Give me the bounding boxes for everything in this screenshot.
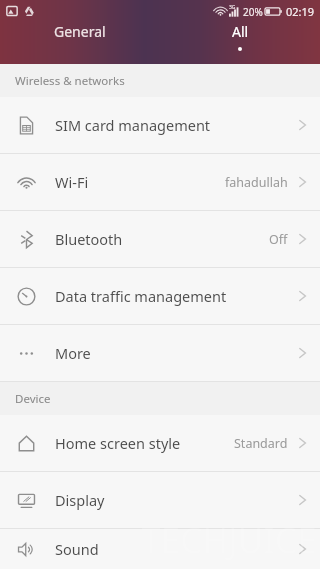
staticText: Data traffic management <box>55 286 298 306</box>
button[interactable]: Bluetooth <box>0 211 320 268</box>
staticText: TECHJUICE <box>142 517 318 563</box>
staticText: All <box>232 22 249 41</box>
button[interactable]: Wi-Fi <box>0 154 320 211</box>
other: Wi-Fi <box>15 171 37 193</box>
button[interactable]: General <box>0 22 160 47</box>
button[interactable]: Display <box>0 472 320 529</box>
staticText: General <box>54 22 106 41</box>
staticText: Wireless & networks <box>15 73 125 89</box>
button[interactable]: All <box>160 22 320 51</box>
staticText: Home screen style <box>55 433 234 453</box>
button[interactable]: Data traffic <box>0 268 320 325</box>
staticText: Display <box>55 490 298 510</box>
other: Home screen style <box>15 432 37 454</box>
other: Display <box>15 489 37 511</box>
button[interactable]: SIM card management <box>0 97 320 154</box>
staticText: Off <box>269 231 288 248</box>
other: Bluetooth <box>15 228 37 250</box>
staticText: More <box>55 343 298 363</box>
other: SIM card management <box>15 114 37 136</box>
other: More <box>15 342 37 364</box>
other: Data traffic <box>15 285 37 307</box>
staticText: Standard <box>234 435 288 452</box>
staticText: Device <box>15 391 51 407</box>
staticText: Bluetooth <box>55 229 269 249</box>
other: Sound <box>15 538 37 560</box>
staticText: fahadullah <box>225 174 288 191</box>
button[interactable]: Sound <box>0 529 320 569</box>
staticText: 3G <box>229 4 236 11</box>
staticText: 20% <box>243 5 263 19</box>
button[interactable]: More <box>0 325 320 382</box>
staticText: 02:19 <box>286 4 315 19</box>
button[interactable]: Home screen style <box>0 415 320 472</box>
staticText: Sound <box>55 539 298 559</box>
staticText: Wi-Fi <box>55 172 225 192</box>
staticText: SIM card management <box>55 115 298 135</box>
